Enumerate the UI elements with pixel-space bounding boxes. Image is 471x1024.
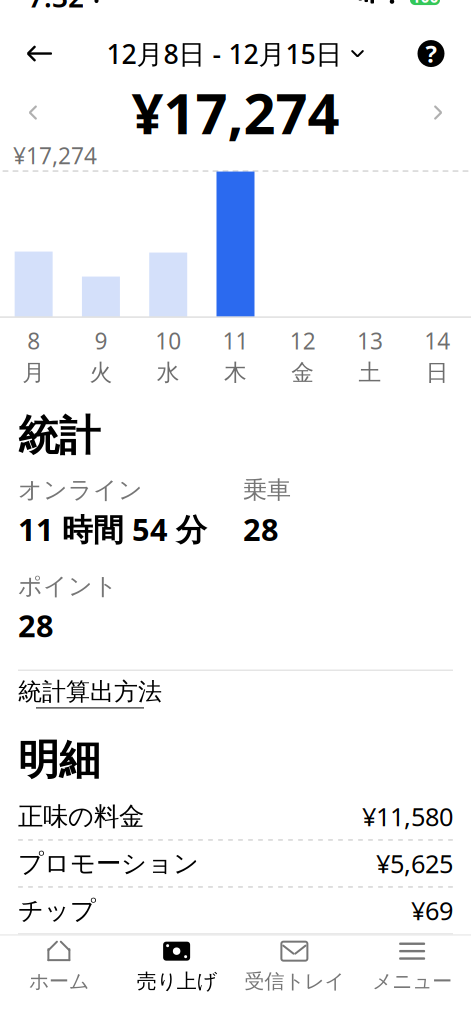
staticText: 14 — [424, 326, 450, 356]
button[interactable]: 次の週 — [415, 89, 461, 137]
staticText: 土 — [359, 359, 382, 386]
staticText: 28 — [18, 605, 54, 646]
staticText: 乗車 — [243, 475, 291, 505]
staticText: 月 — [22, 359, 45, 386]
staticText: 13 — [357, 326, 383, 356]
button[interactable]: チップ — [0, 887, 471, 933]
button[interactable]: 売り上げ — [118, 935, 236, 997]
staticText: 28 — [243, 509, 279, 549]
staticText: 100 — [411, 0, 438, 7]
staticText: 11 — [222, 326, 248, 356]
button[interactable]: 正味の料金 — [0, 793, 471, 839]
staticText: 10 — [155, 326, 181, 356]
button[interactable]: 受信トレイ — [235, 935, 353, 997]
staticText: ? — [425, 38, 436, 69]
button[interactable]: 前の週 — [10, 89, 56, 137]
staticText: ホーム — [29, 969, 89, 994]
staticText: 統計算出方法 — [18, 677, 162, 706]
button[interactable]: メニュー — [353, 935, 471, 997]
staticText: ¥69 — [411, 894, 453, 927]
staticText: オンライン — [18, 475, 143, 505]
staticText: 金 — [291, 359, 314, 386]
staticText: ポイント — [18, 571, 118, 601]
staticText: 9 — [94, 326, 107, 356]
staticText: 受信トレイ — [244, 969, 344, 994]
staticText: 日 — [426, 359, 449, 386]
staticText: ¥11,580 — [362, 800, 453, 833]
staticText: チップ — [18, 895, 96, 926]
staticText: 7:32 — [28, 0, 84, 15]
staticText: 水 — [157, 359, 180, 386]
staticText: 12月8日 - 12月15日 — [106, 36, 342, 71]
button[interactable]: ヘルプ — [409, 32, 453, 76]
staticText: 統計 — [18, 410, 100, 461]
staticText: 12 — [290, 326, 316, 356]
button[interactable]: 戻る — [18, 32, 62, 76]
staticText: 8 — [27, 326, 40, 356]
staticText: 明細 — [18, 735, 100, 785]
button[interactable]: ホーム — [0, 935, 118, 997]
staticText: メニュー — [372, 969, 452, 994]
staticText: プロモーション — [18, 848, 199, 879]
button[interactable]: 統計算出方法 — [0, 671, 471, 715]
staticText: 火 — [89, 359, 112, 386]
button[interactable]: プロモーション — [0, 840, 471, 886]
staticText: ¥17,274 — [13, 140, 97, 171]
button[interactable]: 12月8日 - 12月15日 — [102, 32, 368, 76]
staticText: 売り上げ — [137, 969, 217, 994]
staticText: 木 — [224, 359, 247, 386]
staticText: ¥5,625 — [376, 847, 453, 880]
staticText: 正味の料金 — [18, 801, 144, 832]
staticText: 11 時間 54 分 — [18, 509, 207, 549]
staticText: ¥17,274 — [131, 75, 339, 150]
